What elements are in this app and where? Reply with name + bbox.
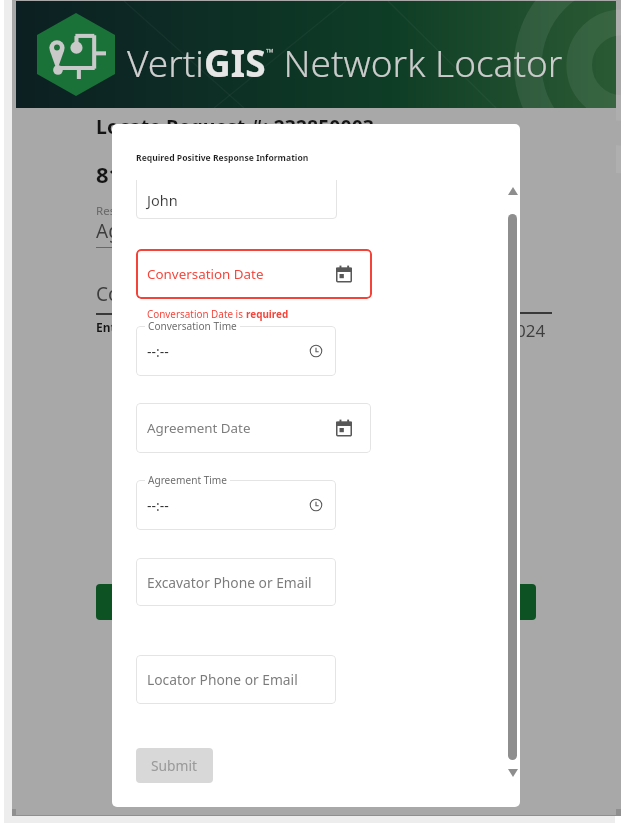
button[interactable]: Submit <box>136 748 213 783</box>
staticText: Submit <box>151 756 198 775</box>
staticText: Conversation Date <box>147 265 264 283</box>
staticText: Conversation Time <box>148 319 237 333</box>
staticText: Conversation Date is <box>147 307 246 320</box>
button[interactable]: Locator Phone or Email <box>136 655 336 704</box>
staticText: Ent <box>96 319 116 335</box>
button[interactable] <box>416 584 536 620</box>
other: Pick conversation date <box>335 265 353 283</box>
button[interactable]: John <box>136 180 337 219</box>
button[interactable]: Excavator Phone or Email <box>136 558 336 606</box>
staticText: --:-- <box>147 342 169 361</box>
staticText: --:-- <box>147 496 169 515</box>
button[interactable] <box>96 584 218 620</box>
staticText: Locate Request #: 232850003 <box>96 113 374 140</box>
other: Pick date <box>335 419 353 437</box>
button[interactable]: Conversation Date <box>136 249 372 299</box>
button[interactable]: --:-- <box>136 480 336 530</box>
staticText: required <box>246 307 289 320</box>
other: Scroll down <box>508 769 518 777</box>
staticText: John <box>147 190 178 210</box>
staticText: 81 <box>96 159 122 189</box>
staticText: Required Positive Response Information <box>136 152 309 164</box>
other: Pick time <box>307 496 325 514</box>
staticText: Agreement Time <box>148 473 227 487</box>
staticText: 024 <box>516 319 546 342</box>
other: Pick time <box>307 342 325 360</box>
staticText: Co <box>96 281 120 307</box>
staticText: ™ <box>266 45 274 59</box>
staticText: Agreement Date <box>147 419 251 437</box>
staticText: Verti <box>127 37 204 87</box>
staticText: Excavator Phone or Email <box>147 573 312 592</box>
other: Scroll up <box>508 187 518 195</box>
staticText: GIS <box>204 37 266 87</box>
staticText: Res <box>96 203 116 219</box>
staticText: Ag <box>96 218 120 244</box>
button[interactable]: Agreement Date <box>136 403 371 453</box>
button[interactable]: --:-- <box>136 326 336 376</box>
staticText: Locator Phone or Email <box>147 670 298 689</box>
staticText: Network Locator <box>274 37 563 87</box>
